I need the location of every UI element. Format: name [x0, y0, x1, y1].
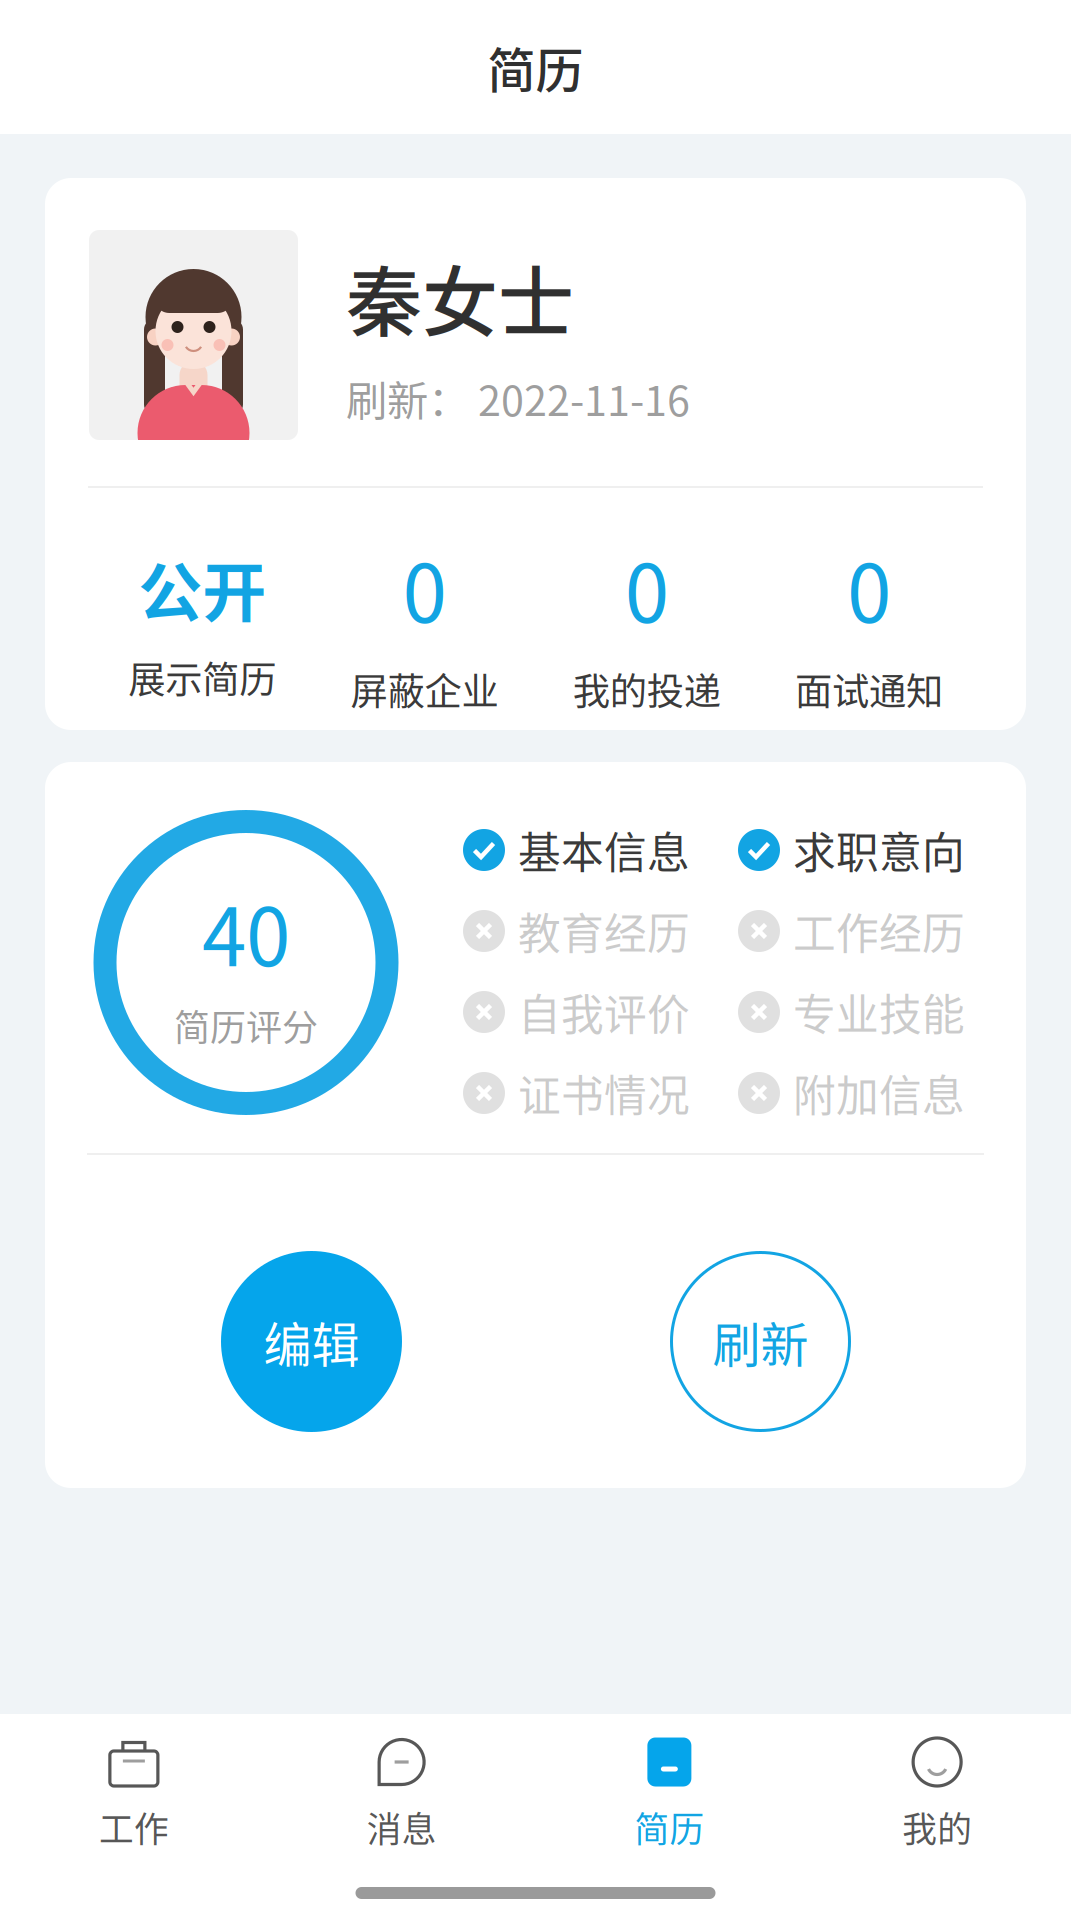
- staticText: 40: [202, 873, 290, 989]
- staticText: 展示简历: [128, 650, 276, 704]
- button[interactable]: 刷新: [670, 1251, 851, 1432]
- button[interactable]: 消息: [268, 1736, 536, 1852]
- staticText: 证书情况: [518, 1062, 690, 1124]
- staticText: 屏蔽企业: [350, 662, 498, 716]
- staticText: 0: [625, 530, 669, 646]
- staticText: 基本信息: [518, 819, 690, 881]
- button[interactable]: 简历: [535, 1736, 803, 1852]
- staticText: 附加信息: [793, 1062, 965, 1124]
- staticText: 我的: [902, 1802, 972, 1852]
- staticText: 教育经历: [518, 900, 690, 962]
- staticText: 简历: [634, 1802, 704, 1852]
- staticText: 0: [402, 530, 446, 646]
- staticText: 我的投递: [573, 662, 721, 716]
- staticText: 编辑: [263, 1307, 359, 1376]
- staticText: 简历评分: [174, 999, 318, 1051]
- staticText: 消息: [367, 1802, 437, 1852]
- staticText: 刷新： 2022-11-16: [346, 368, 690, 428]
- staticText: 0: [847, 530, 891, 646]
- staticText: 工作经历: [793, 900, 965, 962]
- button[interactable]: 我的: [803, 1736, 1071, 1852]
- staticText: 刷新: [712, 1307, 808, 1376]
- staticText: 面试通知: [795, 662, 943, 716]
- staticText: 工作: [99, 1802, 169, 1852]
- staticText: 专业技能: [793, 981, 965, 1043]
- staticText: 秦女士: [346, 242, 574, 352]
- staticText: 求职意向: [793, 819, 965, 881]
- staticText: 简历: [487, 32, 583, 102]
- staticText: 自我评价: [518, 981, 690, 1043]
- staticText: 公开: [138, 542, 266, 634]
- button[interactable]: 编辑: [221, 1251, 402, 1432]
- button[interactable]: 工作: [0, 1736, 268, 1852]
